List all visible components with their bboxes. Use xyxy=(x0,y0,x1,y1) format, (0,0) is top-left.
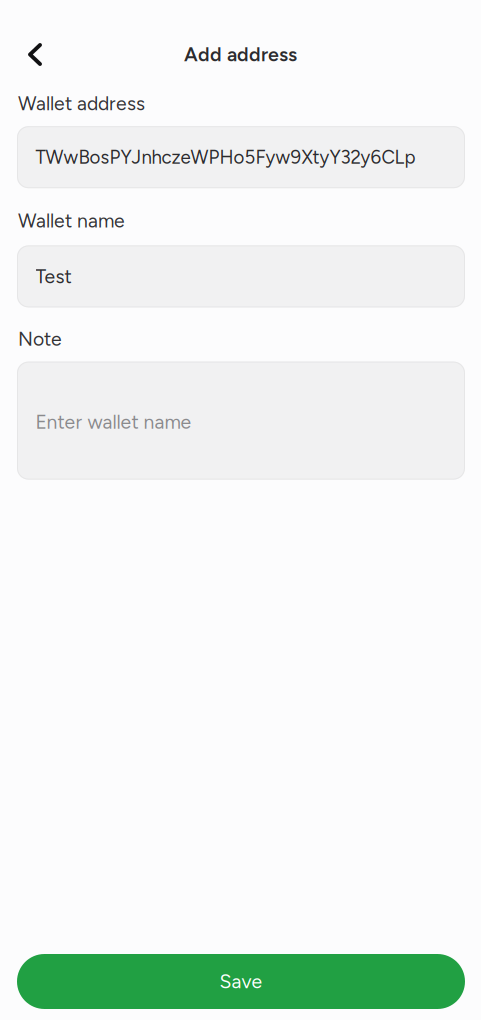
staticText: Add address xyxy=(184,43,297,66)
staticText: TWwBosPYJnhczeWPHo5Fyw9XtyY32y6CLp xyxy=(35,146,415,168)
staticText: Test xyxy=(35,265,71,288)
staticText: Save xyxy=(219,970,262,993)
textField[interactable] xyxy=(17,126,465,188)
staticText: Enter wallet name xyxy=(35,410,191,434)
button[interactable]: Back xyxy=(0,31,58,78)
staticText: Wallet name xyxy=(18,209,125,232)
textField[interactable] xyxy=(17,362,465,480)
textField[interactable] xyxy=(17,245,465,307)
staticText: Note xyxy=(18,327,62,351)
staticText: Wallet address xyxy=(18,92,145,115)
button[interactable]: Save xyxy=(17,954,465,1009)
